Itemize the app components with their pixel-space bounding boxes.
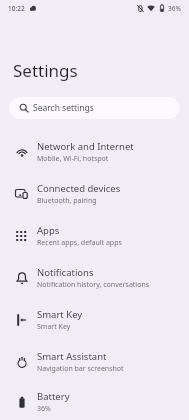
- staticText: Settings: [13, 59, 78, 82]
- staticText: Smart Key: [37, 322, 71, 332]
- button[interactable]: Smart Assistant: [0, 341, 189, 383]
- staticText: Search settings: [33, 102, 94, 114]
- staticText: 10:22: [8, 4, 25, 13]
- staticText: Smart Assistant: [37, 350, 107, 363]
- button[interactable]: Search settings: [9, 97, 180, 119]
- staticText: Network and Internet: [37, 140, 134, 153]
- staticText: Notification history, conversations: [37, 280, 150, 290]
- staticText: Battery: [37, 390, 70, 403]
- staticText: Recent apps, default apps: [37, 238, 122, 248]
- staticText: Navigation bar screenshot: [37, 364, 124, 374]
- staticText: Apps: [37, 224, 60, 237]
- button[interactable]: Connected devices: [0, 173, 189, 215]
- staticText: Bluetooth, pairing: [37, 196, 97, 206]
- button[interactable]: Smart Key: [0, 299, 189, 341]
- button[interactable]: Battery: [0, 383, 189, 420]
- button[interactable]: Network and Internet: [0, 131, 189, 173]
- staticText: Mobile, Wi-Fi, hotspot: [37, 154, 109, 164]
- staticText: 36%: [37, 404, 51, 414]
- staticText: 36%: [168, 4, 181, 13]
- button[interactable]: Apps: [0, 215, 189, 257]
- staticText: Smart Key: [37, 308, 83, 321]
- staticText: Notifications: [37, 266, 94, 279]
- staticText: Connected devices: [37, 182, 121, 195]
- button[interactable]: Notifications: [0, 257, 189, 299]
